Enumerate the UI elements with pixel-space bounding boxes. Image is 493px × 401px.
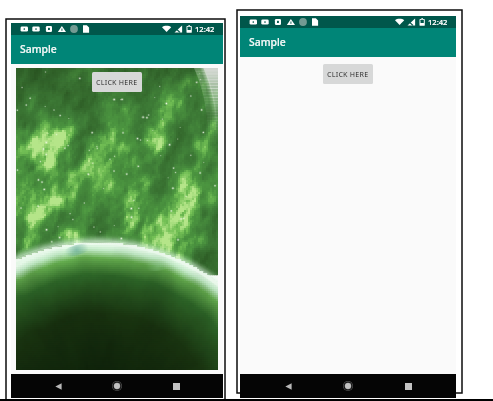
staticText: Sample [20, 42, 57, 56]
button[interactable]: CLICK HERE [92, 72, 142, 92]
button[interactable]: Home [108, 377, 126, 395]
button[interactable]: Recents [399, 377, 417, 395]
staticText: Sample [249, 35, 286, 49]
button[interactable]: CLICK HERE [323, 64, 373, 84]
staticText: 12:42 [428, 17, 448, 27]
staticText: 12:42 [195, 24, 215, 34]
button[interactable]: Back [279, 377, 297, 395]
button[interactable]: Back [49, 377, 67, 395]
button[interactable]: Recents [167, 377, 185, 395]
staticText: CLICK HERE [327, 69, 369, 79]
button[interactable]: Home [339, 377, 357, 395]
staticText: CLICK HERE [96, 77, 138, 87]
